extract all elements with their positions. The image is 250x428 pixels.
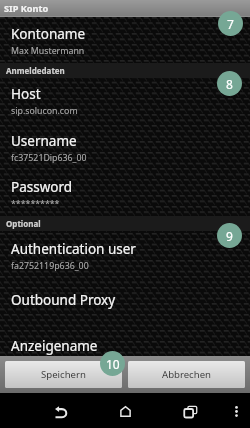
staticText: Authentication user: [11, 240, 136, 258]
button[interactable]: Kontoname: [0, 17, 250, 63]
button[interactable]: Host: [0, 78, 250, 125]
staticText: **********: [11, 198, 60, 210]
staticText: Max Mustermann: [11, 45, 85, 57]
staticText: Host: [11, 85, 41, 103]
staticText: sip.solucon.com: [11, 105, 78, 117]
staticText: 10: [106, 356, 120, 372]
staticText: Username: [11, 132, 77, 150]
staticText: SIP Konto: [4, 2, 49, 15]
staticText: Anmeldedaten: [6, 65, 65, 76]
button[interactable]: Speichern: [5, 361, 122, 388]
button[interactable]: Password: [0, 171, 250, 216]
button[interactable]: Back: [46, 400, 76, 424]
button[interactable]: Authentication user: [0, 231, 250, 278]
button[interactable]: Anzeigename: [0, 324, 250, 356]
staticText: fc37521Dip636_00: [11, 152, 87, 164]
button[interactable]: Outbound Proxy: [0, 278, 250, 324]
staticText: Password: [11, 178, 73, 196]
staticText: 7: [227, 16, 234, 32]
button[interactable]: Recent apps: [175, 400, 206, 424]
button[interactable]: Home: [111, 400, 140, 423]
button[interactable]: Username: [0, 125, 250, 171]
staticText: Outbound Proxy: [11, 291, 116, 309]
staticText: 9: [226, 228, 233, 244]
staticText: Speichern: [41, 368, 86, 381]
button[interactable]: More options: [226, 400, 247, 423]
staticText: Abbrechen: [162, 368, 211, 381]
staticText: 8: [226, 76, 233, 92]
staticText: Optional: [6, 218, 41, 229]
staticText: Anzeigename: [11, 337, 98, 355]
button[interactable]: Abbrechen: [128, 361, 245, 388]
staticText: Kontoname: [11, 25, 86, 43]
staticText: fa2752119p636_00: [11, 260, 89, 272]
